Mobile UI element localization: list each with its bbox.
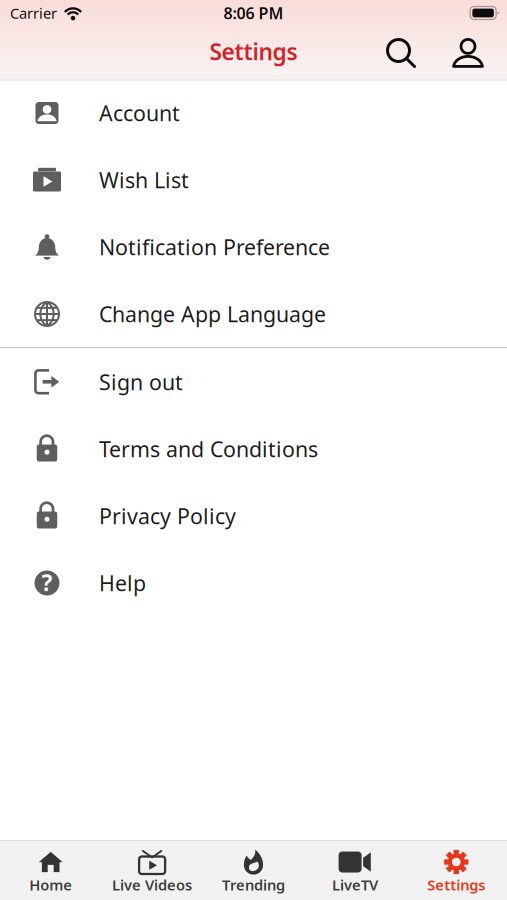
button[interactable]: Wish List	[0, 148, 507, 215]
staticText: Carrier	[10, 3, 57, 23]
button[interactable]: Account	[0, 81, 507, 148]
staticText: Home	[29, 875, 72, 894]
button[interactable]: Change App Language	[0, 282, 507, 349]
staticText: Notification Preference	[99, 233, 330, 261]
staticText: Sign out	[99, 368, 183, 396]
button[interactable]: LiveTV	[304, 841, 406, 900]
staticText: ?	[41, 567, 52, 597]
button[interactable]: Profile	[445, 29, 491, 77]
button[interactable]: Home	[0, 841, 101, 900]
staticText: Settings	[427, 875, 485, 894]
button[interactable]: ?	[0, 551, 507, 618]
staticText: Privacy Policy	[99, 502, 236, 530]
staticText: Live Videos	[112, 875, 192, 894]
staticText: Terms and Conditions	[99, 435, 318, 463]
button[interactable]: Settings	[406, 841, 507, 900]
button[interactable]: Privacy Policy	[0, 484, 507, 551]
staticText: 8:06 PM	[223, 2, 283, 24]
staticText: Trending	[222, 875, 285, 894]
staticText: Account	[99, 99, 180, 127]
button[interactable]: Live Videos	[101, 841, 203, 900]
button[interactable]: Notification Preference	[0, 215, 507, 282]
staticText: LiveTV	[332, 875, 378, 894]
staticText: Help	[99, 569, 146, 597]
button[interactable]: Sign out	[0, 350, 507, 417]
button[interactable]: Search	[378, 29, 424, 77]
staticText: Settings	[209, 36, 297, 66]
staticText: Change App Language	[99, 300, 326, 328]
button[interactable]: Terms and Conditions	[0, 417, 507, 484]
button[interactable]: Trending	[203, 841, 304, 900]
staticText: Wish List	[99, 166, 189, 194]
